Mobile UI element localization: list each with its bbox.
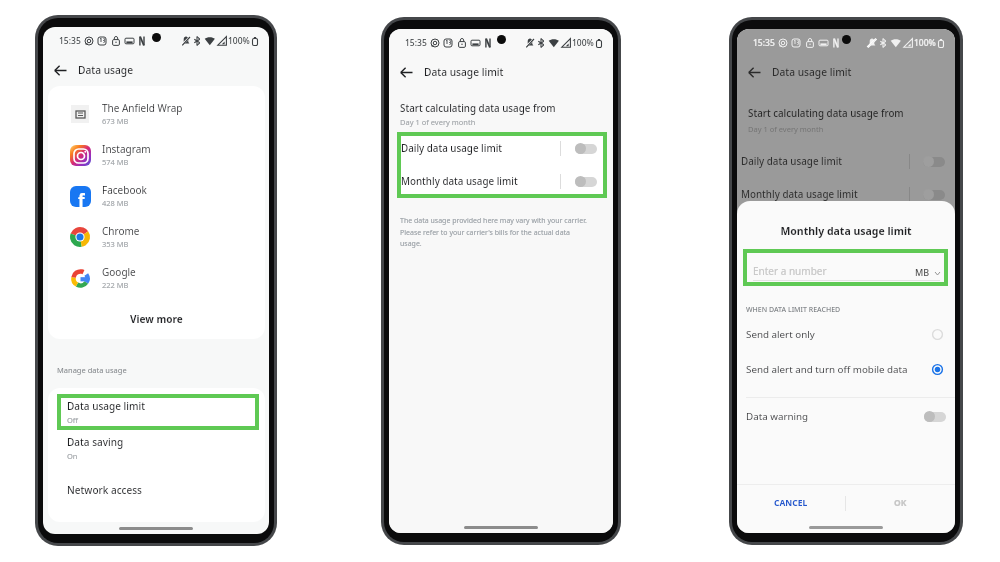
staticText: View more: [130, 312, 183, 326]
staticText: 353 MB: [102, 239, 129, 249]
staticText: MB: [915, 266, 930, 278]
button[interactable]: Back: [48, 58, 72, 82]
staticText: 15:35: [753, 37, 775, 49]
staticText: 222 MB: [102, 280, 129, 290]
button[interactable]: Google: [48, 257, 265, 298]
staticText: Data usage limit: [67, 399, 145, 413]
button[interactable]: Instagram: [48, 134, 265, 175]
button[interactable]: CANCEL: [737, 485, 845, 521]
staticText: 574 MB: [102, 157, 129, 167]
staticText: Data saving: [67, 435, 124, 449]
staticText: f: [78, 189, 85, 207]
staticText: Monthly data usage limit: [737, 224, 955, 238]
staticText: Monthly data usage limit: [401, 175, 518, 188]
button[interactable]: Monthly data usage limit: [397, 165, 607, 198]
button[interactable]: The Anfield Wrap: [48, 93, 265, 134]
staticText: The data usage provided here may vary wi…: [400, 216, 587, 248]
staticText: 100%: [914, 37, 936, 49]
button[interactable]: Data warning: [737, 398, 955, 435]
staticText: Data usage limit: [424, 65, 504, 79]
staticText: Send alert only: [746, 328, 815, 341]
staticText: Manage data usage: [57, 365, 127, 375]
staticText: Data usage limit: [772, 65, 852, 79]
staticText: On: [67, 451, 78, 461]
button[interactable]: Data usage limit: [57, 394, 259, 430]
staticText: Start calculating data usage from: [400, 102, 556, 115]
button[interactable]: Back: [394, 60, 418, 84]
staticText: Data usage: [78, 63, 133, 77]
button[interactable]: Send alert only: [737, 320, 955, 348]
button[interactable]: View more: [48, 298, 265, 339]
staticText: Send alert and turn off mobile data: [746, 363, 908, 376]
staticText: Start calculating data usage from: [748, 107, 904, 120]
button[interactable]: Network access: [48, 465, 265, 515]
staticText: Chrome: [102, 224, 140, 238]
button[interactable]: OK: [846, 485, 955, 521]
staticText: 428 MB: [102, 198, 129, 208]
button[interactable]: Data saving: [48, 430, 265, 465]
staticText: WHEN DATA LIMIT REACHED: [746, 305, 841, 315]
button[interactable]: Chrome: [48, 216, 265, 257]
staticText: Network access: [67, 483, 142, 497]
staticText: Day 1 of every month: [748, 124, 824, 134]
button[interactable]: Send alert and turn off mobile data: [737, 355, 955, 383]
staticText: Data warning: [746, 410, 809, 423]
staticText: Enter a number: [753, 264, 827, 278]
button[interactable]: Back: [742, 60, 766, 84]
staticText: Daily data usage limit: [741, 155, 843, 168]
staticText: The Anfield Wrap: [102, 101, 183, 115]
staticText: 15:35: [59, 35, 81, 47]
staticText: Monthly data usage limit: [741, 188, 858, 201]
staticText: OK: [894, 497, 907, 509]
staticText: Instagram: [102, 142, 151, 156]
button[interactable]: Monthly data usage limit: [737, 178, 955, 211]
staticText: 100%: [228, 35, 250, 47]
staticText: Day 1 of every month: [400, 117, 476, 127]
staticText: 673 MB: [102, 116, 129, 126]
button[interactable]: f: [48, 175, 265, 216]
staticText: CANCEL: [774, 497, 808, 509]
staticText: 100%: [572, 37, 594, 49]
staticText: 15:35: [405, 37, 427, 49]
staticText: Daily data usage limit: [401, 142, 503, 155]
staticText: Facebook: [102, 183, 147, 197]
button[interactable]: Enter a number: [743, 249, 948, 286]
button[interactable]: Daily data usage limit: [737, 145, 955, 178]
staticText: Google: [102, 265, 136, 279]
staticText: Off: [67, 415, 79, 425]
button[interactable]: Daily data usage limit: [397, 132, 607, 165]
